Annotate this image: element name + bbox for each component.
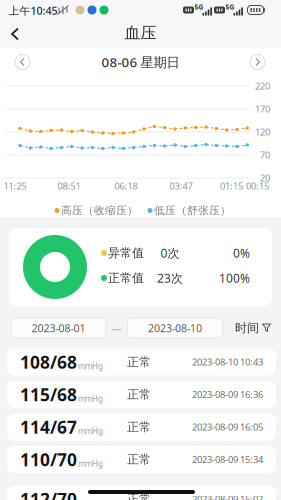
staticText: 正常 [127,355,151,369]
staticText: 正常 [127,452,151,467]
staticText: mmHg [78,361,103,371]
staticText: 2023-08-10 [148,321,202,335]
staticText: 0% [233,245,250,261]
button[interactable]: 115/68 [7,381,276,408]
staticText: 2023-08-09 16:05 [192,421,263,433]
staticText: 08-06 星期日 [101,53,179,71]
staticText: 高压（收缩压） [61,204,138,217]
staticText: 06:18 [114,180,137,192]
staticText: 110/70 [20,448,77,471]
button[interactable]: 后一天 [250,54,265,69]
staticText: 170 [255,103,270,115]
staticText: 100% [219,270,250,286]
staticText: 5G [225,3,234,11]
staticText: 70 [260,149,270,161]
staticText: mmHg [78,458,103,469]
staticText: 0次 [160,245,179,261]
staticText: 23次 [157,270,183,286]
button[interactable]: 前一天 [15,54,30,69]
staticText: 异常值 [108,246,144,260]
button[interactable]: 2023-08-10 [127,318,222,338]
staticText: — [111,321,122,335]
staticText: 5G [194,3,203,11]
button[interactable]: 108/68 [7,348,276,375]
staticText: 血压 [124,23,156,43]
staticText: 20 [260,172,270,184]
staticText: 低压（舒张压） [154,204,231,217]
staticText: 上午10:45 [8,3,57,18]
staticText: 112/70 [20,487,77,500]
staticText: 2023-08-09 16:36 [192,388,263,401]
staticText: 正常值 [108,271,144,285]
staticText: 108/68 [20,350,77,373]
staticText: 2023-08-09 15:34 [192,453,263,466]
button[interactable]: 时间筛选 [231,318,275,338]
staticText: 00:15 [246,180,269,192]
staticText: 114/67 [20,415,77,438]
button[interactable]: 114/67 [7,413,276,440]
staticText: mmHg [78,426,103,436]
staticText: 正常 [127,420,151,434]
staticText: 120 [255,126,270,138]
staticText: 时间 [235,321,259,335]
staticText: 01:15 [220,180,243,192]
staticText: mmHg [78,393,103,404]
button[interactable]: 返回 [7,26,23,42]
button[interactable]: 112/70 [7,485,276,500]
button[interactable]: 110/70 [7,446,276,473]
staticText: 220 [255,80,270,92]
staticText: 正常 [127,387,151,402]
staticText: 08:51 [57,180,80,192]
staticText: 11:25 [3,180,26,192]
staticText: 正常 [127,492,151,500]
staticText: 2023-08-09 15:02 [192,493,263,500]
button[interactable]: 2023-08-01 [11,318,106,338]
staticText: 2023-08-01 [31,321,85,335]
staticText: 115/68 [20,383,77,406]
staticText: 2023-08-10 10:43 [192,356,263,368]
staticText: 03:47 [169,180,192,192]
